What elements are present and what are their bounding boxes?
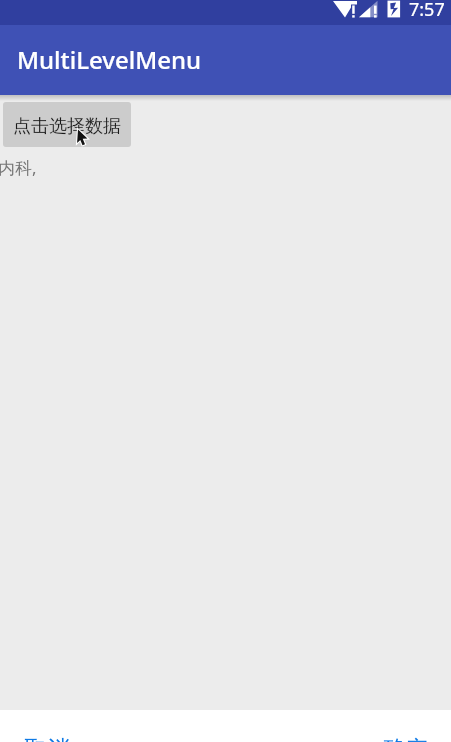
staticText: 取消: [24, 735, 70, 742]
staticText: 确定: [383, 735, 429, 742]
staticText: 点击选择数据: [13, 115, 121, 138]
staticText: 7:57: [409, 0, 445, 22]
button[interactable]: 点击选择数据: [3, 102, 131, 147]
button[interactable]: 确定: [383, 735, 429, 742]
button[interactable]: 取消: [24, 735, 70, 742]
staticText: MultiLevelMenu: [17, 43, 202, 76]
staticText: 内科,: [0, 156, 37, 179]
